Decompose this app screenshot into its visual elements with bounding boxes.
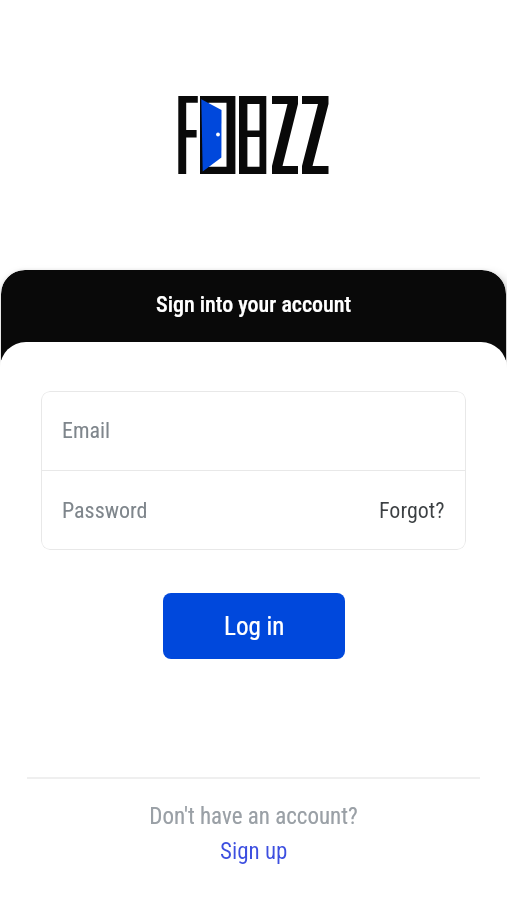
staticText: Email	[62, 418, 111, 444]
button[interactable]: Log in	[163, 593, 345, 659]
staticText: Log in	[224, 612, 285, 641]
staticText: Don't have an account?	[0, 803, 507, 830]
button[interactable]: Sign up	[210, 835, 298, 868]
staticText: Sign into your account	[156, 292, 352, 318]
button[interactable]: Email	[41, 391, 466, 470]
button[interactable]: Password	[41, 471, 466, 550]
staticText: Forgot?	[379, 498, 445, 524]
staticText: Password	[62, 498, 148, 524]
staticText: Sign up	[220, 838, 288, 865]
